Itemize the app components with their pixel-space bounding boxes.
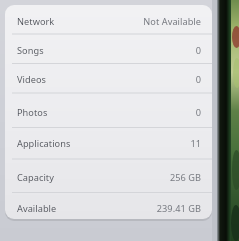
staticText: Photos: [17, 106, 48, 119]
button[interactable]: Network: [5, 5, 212, 34]
staticText: 0: [195, 44, 201, 57]
staticText: 256 GB: [169, 171, 201, 184]
staticText: Videos: [17, 73, 46, 86]
staticText: Not Available: [143, 15, 201, 28]
staticText: Songs: [17, 44, 44, 57]
button[interactable]: Videos: [5, 63, 212, 93]
button[interactable]: Available: [5, 192, 212, 218]
staticText: Network: [17, 15, 55, 28]
staticText: Applications: [17, 137, 71, 150]
staticText: 239.41 GB: [156, 202, 201, 215]
staticText: Available: [17, 202, 57, 215]
button[interactable]: Photos: [5, 93, 212, 128]
staticText: 0: [195, 106, 201, 119]
staticText: Capacity: [17, 171, 54, 184]
button[interactable]: Songs: [5, 34, 212, 64]
staticText: 0: [195, 73, 201, 86]
staticText: 11: [190, 137, 201, 150]
button[interactable]: Applications: [5, 127, 212, 159]
button[interactable]: Capacity: [5, 159, 212, 193]
